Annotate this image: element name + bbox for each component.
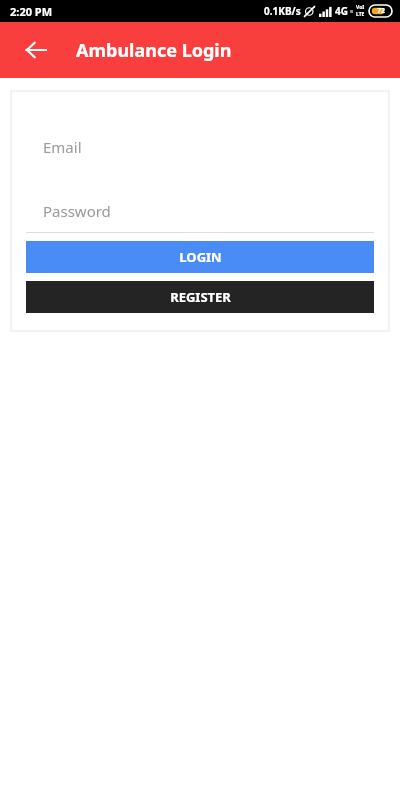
button[interactable]: REGISTER	[26, 281, 374, 313]
button[interactable]: LOGIN	[26, 241, 374, 273]
staticText: LTE	[356, 11, 365, 18]
staticText: Password	[43, 201, 111, 221]
button[interactable]: Email	[26, 137, 374, 157]
staticText: LOGIN	[179, 248, 222, 266]
staticText: 72	[377, 6, 386, 16]
staticText: Ambulance Login	[76, 38, 232, 63]
button[interactable]: Password	[26, 201, 374, 221]
button[interactable]: Back	[12, 26, 60, 74]
staticText: 2:20 PM	[10, 4, 53, 19]
staticText: Email	[43, 137, 82, 157]
staticText: REGISTER	[170, 288, 231, 306]
staticText: 0.1KB/s	[264, 4, 301, 18]
staticText: VoI	[356, 4, 365, 11]
staticText: 4G	[335, 4, 348, 18]
